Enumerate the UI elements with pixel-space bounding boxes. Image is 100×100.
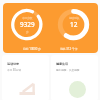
staticText: 运动时长 [69,16,80,19]
staticText: 步 [26,30,29,33]
staticText: 今日 30分钟 [7,68,22,72]
button[interactable]: 健康生活 [51,55,98,100]
staticText: 今日步数 [22,16,33,19]
staticText: 喝水提醒、久坐提醒 [56,68,80,71]
staticText: 目标 10000 步 [23,47,41,51]
button[interactable]: 运动记录 [2,55,49,100]
button[interactable]: 今日步数 [3,3,98,53]
staticText: 健康生活 [56,62,68,66]
staticText: 运动记录 [7,62,19,66]
staticText: 9329 [20,20,35,29]
staticText: 12 [70,20,78,29]
staticText: 消耗 312 千卡 [60,47,78,51]
other: Treadmill [19,82,36,95]
